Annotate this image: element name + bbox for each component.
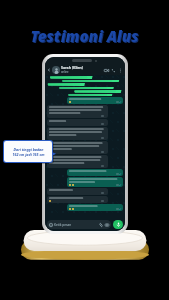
button[interactable]: Camera: [104, 222, 109, 227]
staticText: Ketik pesan: [54, 223, 72, 227]
button[interactable]: [67, 97, 123, 104]
button[interactable]: [47, 127, 108, 140]
button[interactable]: Voice call: [110, 67, 116, 73]
staticText: Dari tinggi badan 162 cm jadi 165 cm: [12, 147, 45, 157]
button[interactable]: Dari tinggi badan 162 cm jadi 165 cm: [4, 141, 52, 162]
button[interactable]: [47, 105, 108, 118]
button[interactable]: [47, 155, 108, 168]
staticText: online: [61, 70, 69, 74]
button[interactable]: [47, 196, 108, 203]
button[interactable]: [47, 188, 108, 195]
staticText: Sarah (Klien): [61, 65, 83, 70]
staticText: Testimoni Alus: [31, 27, 140, 47]
staticText: Testimoni Alus: [30, 26, 139, 46]
button[interactable]: More options: [117, 67, 123, 73]
button[interactable]: Ketik pesan: [47, 220, 111, 229]
button[interactable]: Send voice message: [113, 220, 123, 229]
button[interactable]: [67, 169, 123, 176]
button[interactable]: [47, 141, 108, 154]
button[interactable]: [67, 177, 123, 187]
button[interactable]: Attach: [98, 222, 103, 227]
button[interactable]: Video call: [103, 67, 109, 73]
button[interactable]: [47, 119, 108, 126]
button[interactable]: [67, 204, 123, 211]
